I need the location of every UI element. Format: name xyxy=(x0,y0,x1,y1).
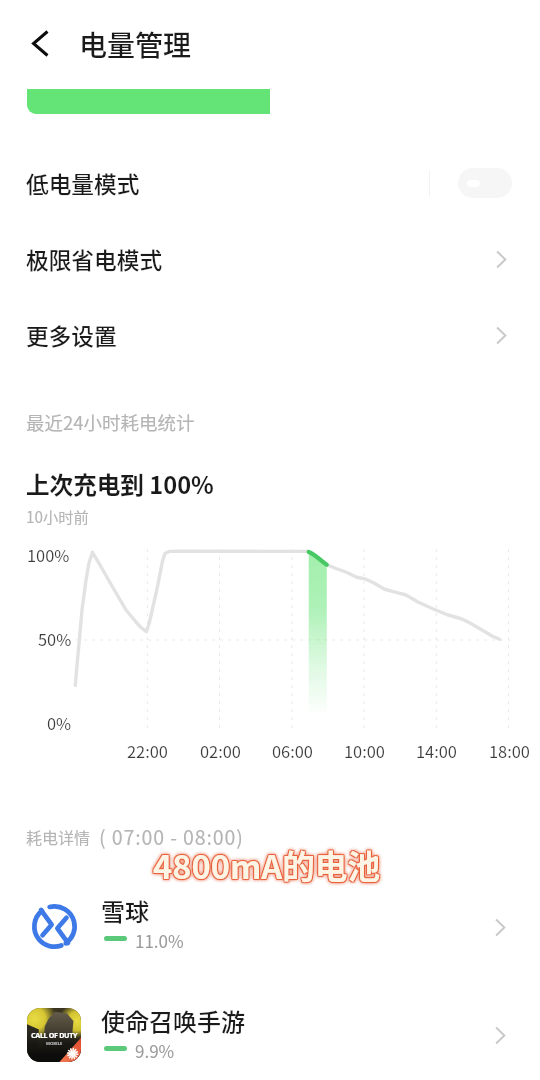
staticText: 4800mA的电池 xyxy=(157,841,385,888)
staticText: MOBILE xyxy=(46,1041,63,1047)
staticText: 上次充电到 100% xyxy=(26,467,214,501)
staticText: 02:00 xyxy=(200,739,241,763)
staticText: 电量管理 xyxy=(79,24,192,65)
staticText: 更多设置 xyxy=(26,319,117,352)
staticText: 0% xyxy=(47,711,72,735)
staticText: 4800mA的电池 xyxy=(156,838,384,885)
staticText: CALL OF DUTY xyxy=(31,1030,78,1040)
staticText: 4800mA的电池 xyxy=(155,839,383,886)
staticText: 4800mA的电池 xyxy=(154,842,382,889)
staticText: 耗电详情 xyxy=(26,825,91,848)
staticText: 4800mA的电池 xyxy=(153,843,381,890)
staticText: 50% xyxy=(38,627,72,651)
staticText: 22:00 xyxy=(127,739,168,763)
staticText: 4800mA的电池 xyxy=(152,842,380,889)
staticText: 4800mA的电池 xyxy=(155,843,383,890)
staticText: 4800mA的电池 xyxy=(149,841,377,888)
staticText: 14:00 xyxy=(416,739,457,763)
button[interactable]: CALL OF DUTY xyxy=(0,998,540,1074)
staticText: 11.0% xyxy=(135,928,184,953)
staticText: 4800mA的电池 xyxy=(152,840,380,887)
staticText: ( 07:00 - 08:00) xyxy=(99,822,244,850)
staticText: 100% xyxy=(27,543,70,567)
staticText: 4800mA的电池 xyxy=(151,841,379,888)
staticText: 4800mA的电池 xyxy=(153,840,381,887)
button[interactable]: 雪球 xyxy=(0,890,540,966)
staticText: 9.9% xyxy=(135,1038,175,1063)
staticText: 4800mA的电池 xyxy=(153,842,381,889)
staticText: 10小时前 xyxy=(26,505,89,527)
staticText: 4800mA的电池 xyxy=(150,838,378,885)
staticText: 4800mA的电池 xyxy=(154,841,382,888)
button[interactable]: Back xyxy=(18,21,62,65)
staticText: 4800mA的电池 xyxy=(155,841,383,888)
staticText: 4800mA的电池 xyxy=(153,841,381,888)
staticText: 4800mA的电池 xyxy=(156,844,384,891)
staticText: 4800mA的电池 xyxy=(154,840,382,887)
staticText: 4800mA的电池 xyxy=(152,841,380,888)
staticText: 雪球 xyxy=(101,893,149,928)
staticText: 4800mA的电池 xyxy=(151,843,379,890)
staticText: 低电量模式 xyxy=(26,167,140,200)
staticText: 10:00 xyxy=(344,739,385,763)
staticText: 18:00 xyxy=(489,739,530,763)
staticText: 4800mA的电池 xyxy=(153,837,381,884)
button[interactable]: 更多设置 xyxy=(0,297,540,373)
staticText: 06:00 xyxy=(272,739,313,763)
button[interactable]: 低电量模式 xyxy=(0,145,540,221)
staticText: 4800mA的电池 xyxy=(153,845,381,892)
staticText: 4800mA的电池 xyxy=(150,844,378,891)
staticText: 4800mA的电池 xyxy=(151,839,379,886)
staticText: 4800mA的电池 xyxy=(153,839,381,886)
staticText: 使命召唤手游 xyxy=(101,1003,245,1038)
button[interactable]: Toggle low battery mode xyxy=(458,168,512,198)
button[interactable]: 极限省电模式 xyxy=(0,221,540,297)
staticText: 最近24小时耗电统计 xyxy=(26,409,195,436)
staticText: 极限省电模式 xyxy=(26,243,163,276)
